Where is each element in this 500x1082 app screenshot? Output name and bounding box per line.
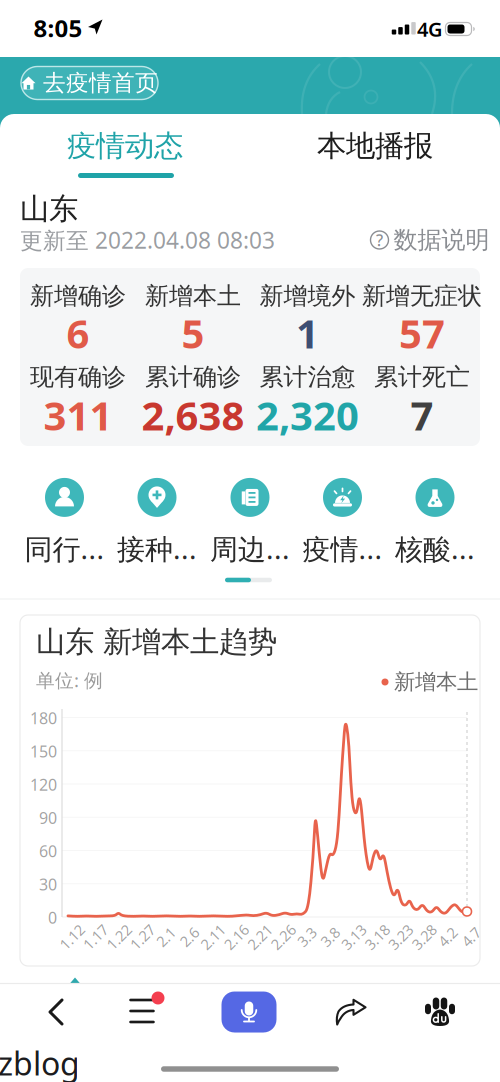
staticText: 180 [30,707,57,729]
staticText: 累计确诊 [145,362,241,392]
staticText: 疫情动态 [67,128,183,164]
button[interactable]: 去疫情首页 [21,66,158,99]
staticText: 3.23 [387,927,415,947]
button[interactable]: 本地播报 [250,124,500,168]
staticText: 2.21 [246,927,274,947]
button[interactable]: 周边... [210,478,290,567]
staticText: ? [376,229,383,251]
staticText: 150 [30,741,57,762]
staticText: 5 [181,306,204,359]
button[interactable]: Voice search [221,991,276,1032]
staticText: 同行... [24,530,104,567]
staticText: 2.1 [156,927,176,947]
staticText: 2.11 [199,927,227,947]
staticText: 3.18 [363,927,391,947]
staticText: 4G [417,16,443,42]
staticText: 1.17 [81,927,109,947]
staticText: 核酸... [395,530,475,567]
staticText: 新增确诊 [30,281,126,311]
staticText: 57 [399,306,445,359]
staticText: 2,320 [256,388,359,441]
button[interactable]: 疫情... [302,478,382,567]
button[interactable]: 同行... [24,478,104,567]
staticText: 山东 新增本土趋势 [36,624,277,660]
staticText: 8:05 [33,12,82,44]
staticText: 周边... [210,530,290,567]
staticText: 新增无症状 [362,281,482,311]
button[interactable]: Back [46,998,70,1026]
staticText: 7 [410,388,433,441]
staticText: 单位: 例 [36,668,103,692]
staticText: 新增境外 [259,281,355,311]
button[interactable]: Baidu [423,997,456,1027]
staticText: 4.2 [437,927,457,947]
staticText: 311 [43,388,112,441]
staticText: 90 [39,807,57,828]
staticText: 3.3 [297,927,317,947]
staticText: 0 [48,907,57,928]
staticText: 新增本土 [145,281,241,311]
staticText: 1.12 [58,927,86,947]
staticText: 新增本土 [394,669,478,695]
staticText: 1.27 [128,927,156,947]
staticText: 数据说明 [393,225,489,255]
button[interactable]: Menu [129,995,165,1031]
staticText: 120 [30,774,57,795]
staticText: 本地播报 [317,128,433,164]
staticText: 2.16 [222,927,250,947]
staticText: 更新至 2022.04.08 08:03 [20,225,275,255]
staticText: 6 [66,306,89,359]
staticText: 3.13 [340,927,368,947]
staticText: 累计治愈 [259,362,355,392]
staticText: 接种... [117,530,197,567]
staticText: 3.28 [410,927,438,947]
button[interactable]: ? [370,225,489,255]
staticText: 2,638 [141,388,244,441]
button[interactable]: Share [335,998,369,1026]
staticText: 30 [39,874,57,895]
staticText: 2.6 [179,927,199,947]
staticText: 山东 [20,191,78,227]
staticText: 疫情... [302,530,382,567]
staticText: 3.8 [320,927,340,947]
button[interactable]: 接种... [117,478,197,567]
button[interactable]: 疫情动态 [0,124,250,168]
staticText: 1 [296,306,319,359]
staticText: 现有确诊 [30,362,126,392]
staticText: zblog [0,1042,80,1082]
staticText: 60 [39,840,57,862]
staticText: 2.26 [269,927,297,947]
button[interactable]: 核酸... [395,478,475,567]
staticText: 4.7 [461,927,481,947]
staticText: 1.22 [105,927,133,947]
staticText: 累计死亡 [374,362,470,392]
staticText: 去疫情首页 [43,69,158,97]
